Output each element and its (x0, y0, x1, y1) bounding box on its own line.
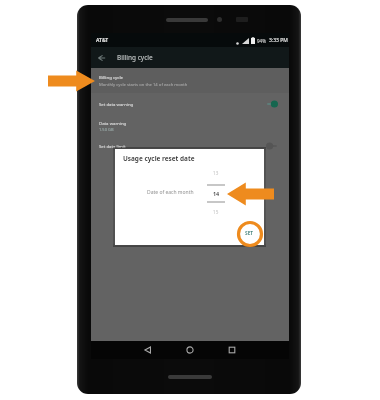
staticText: 15 (213, 209, 219, 215)
staticText: SET (245, 230, 254, 237)
staticText: 94% (257, 38, 266, 44)
staticText: Set data limit (99, 143, 126, 149)
button[interactable]: Back (91, 47, 289, 68)
staticText: 1.50 GB (99, 127, 114, 132)
button[interactable]: Home (183, 343, 197, 357)
staticText: Billing cycle (99, 74, 124, 80)
button[interactable]: Set data warning (91, 93, 289, 115)
button[interactable]: Set data limit (91, 136, 289, 156)
staticText: Billing cycle (117, 53, 153, 62)
button[interactable]: Recents (225, 343, 239, 357)
staticText: Data warning (99, 120, 127, 126)
button[interactable]: Data warning (91, 115, 289, 136)
staticText: Date of each month (147, 189, 194, 196)
button[interactable]: Billing cycle (91, 68, 289, 93)
staticText: 3:33 PM (269, 37, 288, 44)
staticText: 14 (213, 190, 220, 197)
button[interactable]: SET (239, 226, 259, 240)
staticText: Set data warning (99, 101, 134, 107)
staticText: Monthly cycle starts on the 14 of each m… (99, 82, 188, 88)
staticText: Usage cycle reset date (123, 154, 195, 163)
staticText: 13 (213, 170, 219, 176)
button[interactable]: Back (141, 343, 155, 357)
staticText: AT&T (96, 37, 109, 44)
button[interactable]: Back (96, 53, 106, 63)
